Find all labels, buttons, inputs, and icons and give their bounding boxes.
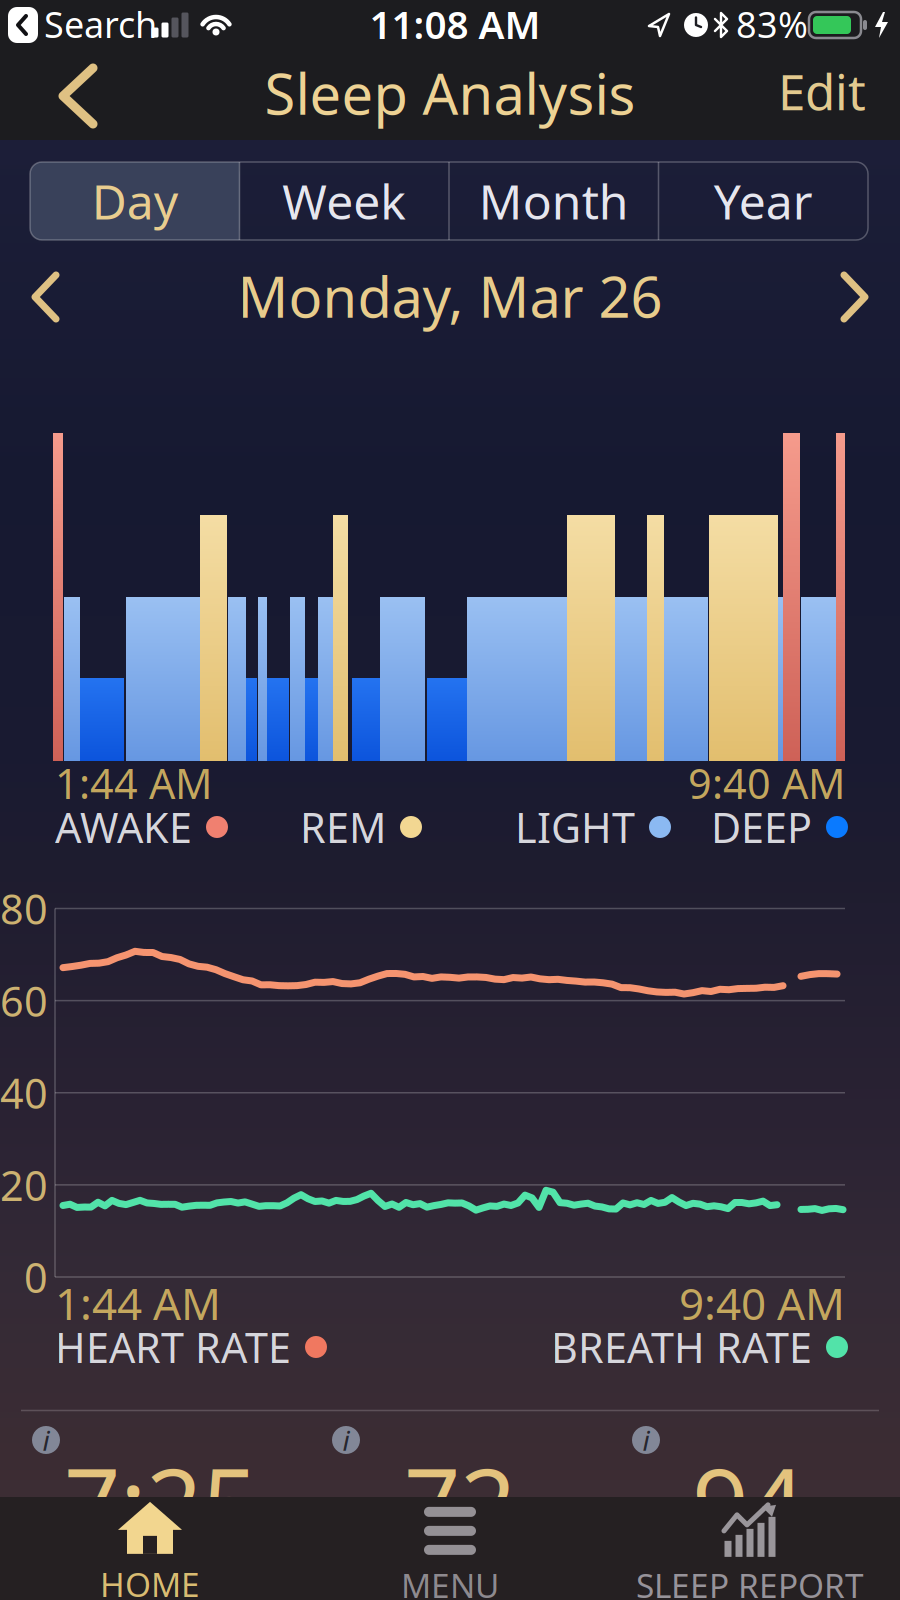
staticText: Sleep Analysis [264,56,635,130]
button[interactable]: MENU [330,1509,570,1600]
button[interactable]: Year [658,162,868,240]
button[interactable]: HOME [30,1506,270,1600]
staticText: BREATH RATE [551,1320,812,1374]
staticText: i [342,1421,349,1459]
staticText: 83% [736,0,808,48]
button[interactable]: Info [32,1421,60,1459]
staticText: 60 [0,973,48,1028]
button[interactable]: Previous day [32,272,60,322]
staticText: DEEP [711,800,812,854]
staticText: 0 [24,1250,48,1304]
button[interactable]: Back to Search [8,7,38,43]
staticText: 1:44 AM [55,1274,221,1332]
button[interactable]: Info [332,1421,360,1459]
staticText: 40 [0,1065,48,1120]
staticText: 9:40 AM [688,756,845,810]
staticText: HEART RATE [55,1320,291,1374]
staticText: 72 [404,1436,516,1567]
staticText: i [642,1421,649,1459]
staticText: 94 [692,1436,804,1567]
button[interactable]: Next day [840,272,868,322]
staticText: Monday, Mar 26 [237,259,662,333]
staticText: REM [300,800,386,854]
staticText: i [42,1421,49,1459]
button[interactable]: SLEEP REPORT [610,1508,890,1600]
button[interactable]: Week [239,162,449,240]
staticText: 7:25 [64,1436,258,1567]
staticText: 80 [0,881,48,936]
staticText: Day [92,169,178,233]
staticText: Edit [778,58,866,124]
staticText: 20 [0,1157,48,1212]
button[interactable]: Search [44,0,204,48]
button[interactable]: Month [449,162,658,240]
staticText: Month [479,169,629,233]
staticText: AWAKE [55,800,192,854]
staticText: SLEEP REPORT [636,1563,864,1600]
button[interactable]: Day [30,162,239,240]
staticText: 1:44 AM [55,756,212,810]
staticText: Week [282,169,406,233]
button[interactable]: Info [632,1421,660,1459]
staticText: Year [714,169,813,233]
staticText: 9:40 AM [679,1274,845,1332]
staticText: Search [44,0,157,48]
staticText: MENU [401,1563,499,1600]
staticText: LIGHT [515,800,635,854]
staticText: 11:08 AM [369,0,540,50]
staticText: HOME [100,1562,200,1600]
button[interactable]: Back [55,64,101,128]
button[interactable]: Edit [778,58,866,124]
